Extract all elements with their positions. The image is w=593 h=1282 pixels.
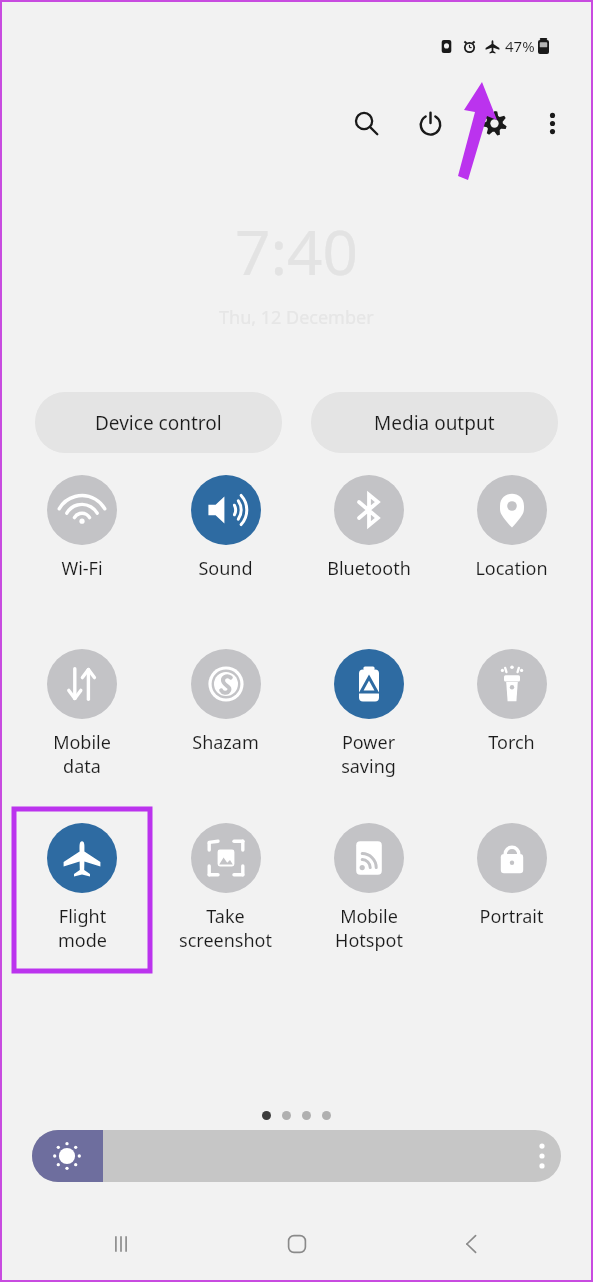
staticText: Flight mode	[58, 904, 107, 952]
button[interactable]: Torch	[440, 641, 583, 755]
button[interactable]: Media output	[311, 392, 558, 453]
staticText: 47%	[505, 36, 535, 56]
staticText: Mobile data	[53, 730, 111, 778]
button[interactable]: Brightness	[32, 1130, 561, 1182]
button[interactable]: Location	[440, 467, 583, 581]
button[interactable]: More options	[529, 100, 575, 146]
button[interactable]: Search	[343, 100, 389, 146]
staticText: Take screenshot	[179, 904, 272, 952]
button[interactable]: Flight mode	[10, 815, 154, 952]
button[interactable]: Sound	[154, 467, 297, 581]
button[interactable]: Settings	[471, 100, 517, 146]
staticText: Portrait	[479, 904, 544, 929]
button[interactable]: Shazam	[154, 641, 297, 755]
staticText: 7:40	[235, 209, 359, 293]
button[interactable]: Bluetooth	[297, 467, 440, 581]
button[interactable]: Power saving	[297, 641, 440, 778]
staticText: Wi-Fi	[61, 556, 103, 581]
button[interactable]: Mobile data	[10, 641, 154, 778]
button[interactable]: Wi-Fi	[10, 467, 154, 581]
staticText: Thu, 12 December	[219, 305, 374, 330]
button[interactable]: Mobile Hotspot	[297, 815, 440, 952]
button[interactable]: Take screenshot	[154, 815, 297, 952]
button[interactable]: Portrait	[440, 815, 583, 929]
staticText: Bluetooth	[327, 556, 411, 581]
button[interactable]: Power off	[407, 100, 453, 146]
staticText: Shazam	[192, 730, 259, 755]
staticText: Media output	[374, 410, 495, 436]
button[interactable]: Home	[242, 1206, 352, 1282]
staticText: Sound	[198, 556, 253, 581]
staticText: Mobile Hotspot	[335, 904, 403, 952]
button[interactable]: Back	[417, 1206, 527, 1282]
button[interactable]: Recent apps	[66, 1206, 176, 1282]
staticText: Location	[475, 556, 548, 581]
staticText: Torch	[488, 730, 535, 755]
button[interactable]: Device control	[35, 392, 282, 453]
staticText: Device control	[95, 410, 222, 436]
staticText: Power saving	[341, 730, 396, 778]
